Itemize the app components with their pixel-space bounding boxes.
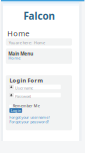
staticText: Home bbox=[8, 55, 20, 61]
staticText: Falcon bbox=[23, 9, 54, 23]
button[interactable]: Home bbox=[34, 40, 45, 45]
button[interactable]: Log in bbox=[9, 108, 22, 113]
staticText: Login Form bbox=[9, 77, 42, 84]
staticText: Forgot your username? bbox=[9, 115, 50, 120]
staticText: Password bbox=[15, 94, 31, 99]
button[interactable]: Home bbox=[8, 55, 20, 61]
button[interactable]: Remember Me bbox=[9, 103, 49, 108]
button[interactable]: Forgot your username? bbox=[9, 115, 50, 120]
staticText: Username bbox=[15, 85, 33, 91]
button[interactable]: Forgot your password? bbox=[9, 119, 49, 124]
staticText: Remember Me bbox=[13, 103, 40, 108]
staticText: You are here: bbox=[9, 40, 32, 45]
staticText: Forgot your password? bbox=[9, 119, 49, 124]
staticText: Log in bbox=[11, 108, 21, 113]
staticText: Home bbox=[7, 28, 29, 38]
staticText: Home bbox=[34, 40, 45, 45]
staticText: Main Menu bbox=[8, 51, 33, 57]
